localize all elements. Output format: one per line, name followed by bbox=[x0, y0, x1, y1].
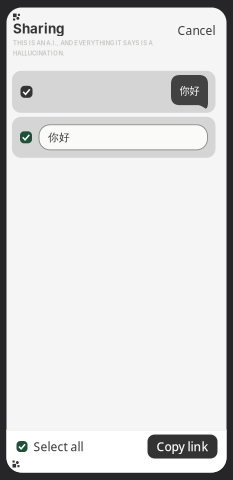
staticText: Sharing bbox=[13, 20, 64, 37]
staticText: Select all bbox=[33, 439, 83, 454]
staticText: Copy link bbox=[156, 439, 208, 454]
button[interactable]: 你好 bbox=[12, 71, 215, 113]
button[interactable]: Cancel bbox=[174, 18, 218, 42]
staticText: Cancel bbox=[177, 22, 215, 38]
staticText: 你好 bbox=[48, 131, 70, 144]
staticText: 你好 bbox=[179, 83, 199, 98]
button[interactable]: Select all bbox=[16, 436, 83, 457]
button[interactable]: Copy link bbox=[147, 435, 217, 458]
staticText: THIS IS AN A.I., AND EVERYTHING IT SAYS … bbox=[13, 40, 153, 57]
button[interactable]: 你好 bbox=[12, 117, 215, 158]
